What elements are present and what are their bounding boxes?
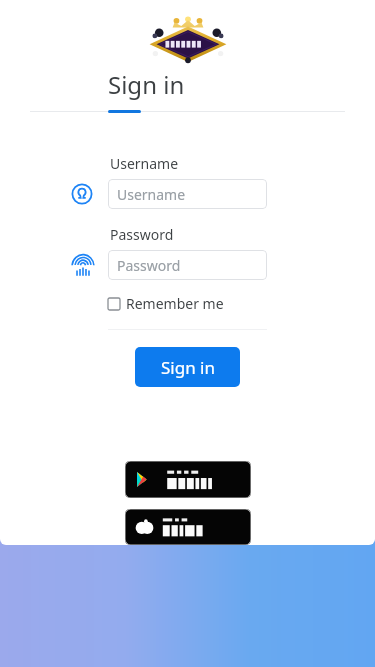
button[interactable]: Get it on Google Play — [125, 461, 251, 498]
button[interactable]: Sign in — [135, 347, 240, 387]
staticText: Username — [110, 154, 179, 173]
staticText: Sign in — [161, 356, 215, 379]
button[interactable]: Remember me — [108, 294, 224, 313]
button[interactable]: Username — [108, 179, 267, 209]
button[interactable]: Download on the App Store — [125, 509, 251, 545]
staticText: Password — [117, 256, 181, 275]
button[interactable]: Password — [108, 250, 267, 280]
staticText: Remember me — [126, 294, 224, 313]
other: Fingerprint — [70, 252, 96, 278]
other: Username — [70, 182, 94, 206]
staticText: Password — [110, 225, 174, 244]
staticText: Username — [117, 185, 186, 204]
staticText: Sign in — [108, 68, 185, 101]
